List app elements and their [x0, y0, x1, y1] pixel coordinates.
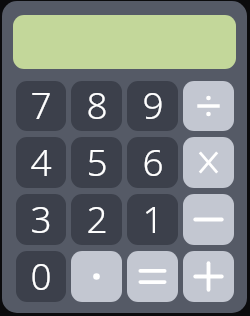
staticText: 9: [142, 81, 164, 129]
button[interactable]: 8: [71, 81, 122, 131]
staticText: 4: [30, 137, 52, 186]
button[interactable]: 1: [127, 194, 178, 245]
button[interactable]: Minus: [183, 194, 234, 245]
staticText: 0: [30, 251, 52, 300]
staticText: 1: [142, 194, 164, 243]
button[interactable]: Display: [13, 15, 236, 69]
staticText: 7: [30, 81, 52, 129]
button[interactable]: 3: [16, 194, 66, 245]
button[interactable]: 4: [16, 137, 66, 188]
staticText: 5: [86, 137, 108, 186]
staticText: 8: [86, 81, 108, 129]
staticText: 6: [142, 137, 164, 186]
button[interactable]: Multiply: [183, 137, 234, 188]
staticText: 3: [30, 194, 52, 243]
button[interactable]: 9: [127, 81, 178, 131]
button[interactable]: Decimal point: [71, 251, 122, 302]
button[interactable]: Plus: [183, 251, 234, 302]
button[interactable]: 7: [16, 81, 66, 131]
button[interactable]: 2: [71, 194, 122, 245]
button[interactable]: Equals: [127, 251, 178, 302]
button[interactable]: 5: [71, 137, 122, 188]
staticText: 2: [86, 194, 108, 243]
button[interactable]: 6: [127, 137, 178, 188]
button[interactable]: 0: [16, 251, 66, 302]
button[interactable]: Divide: [183, 81, 234, 131]
